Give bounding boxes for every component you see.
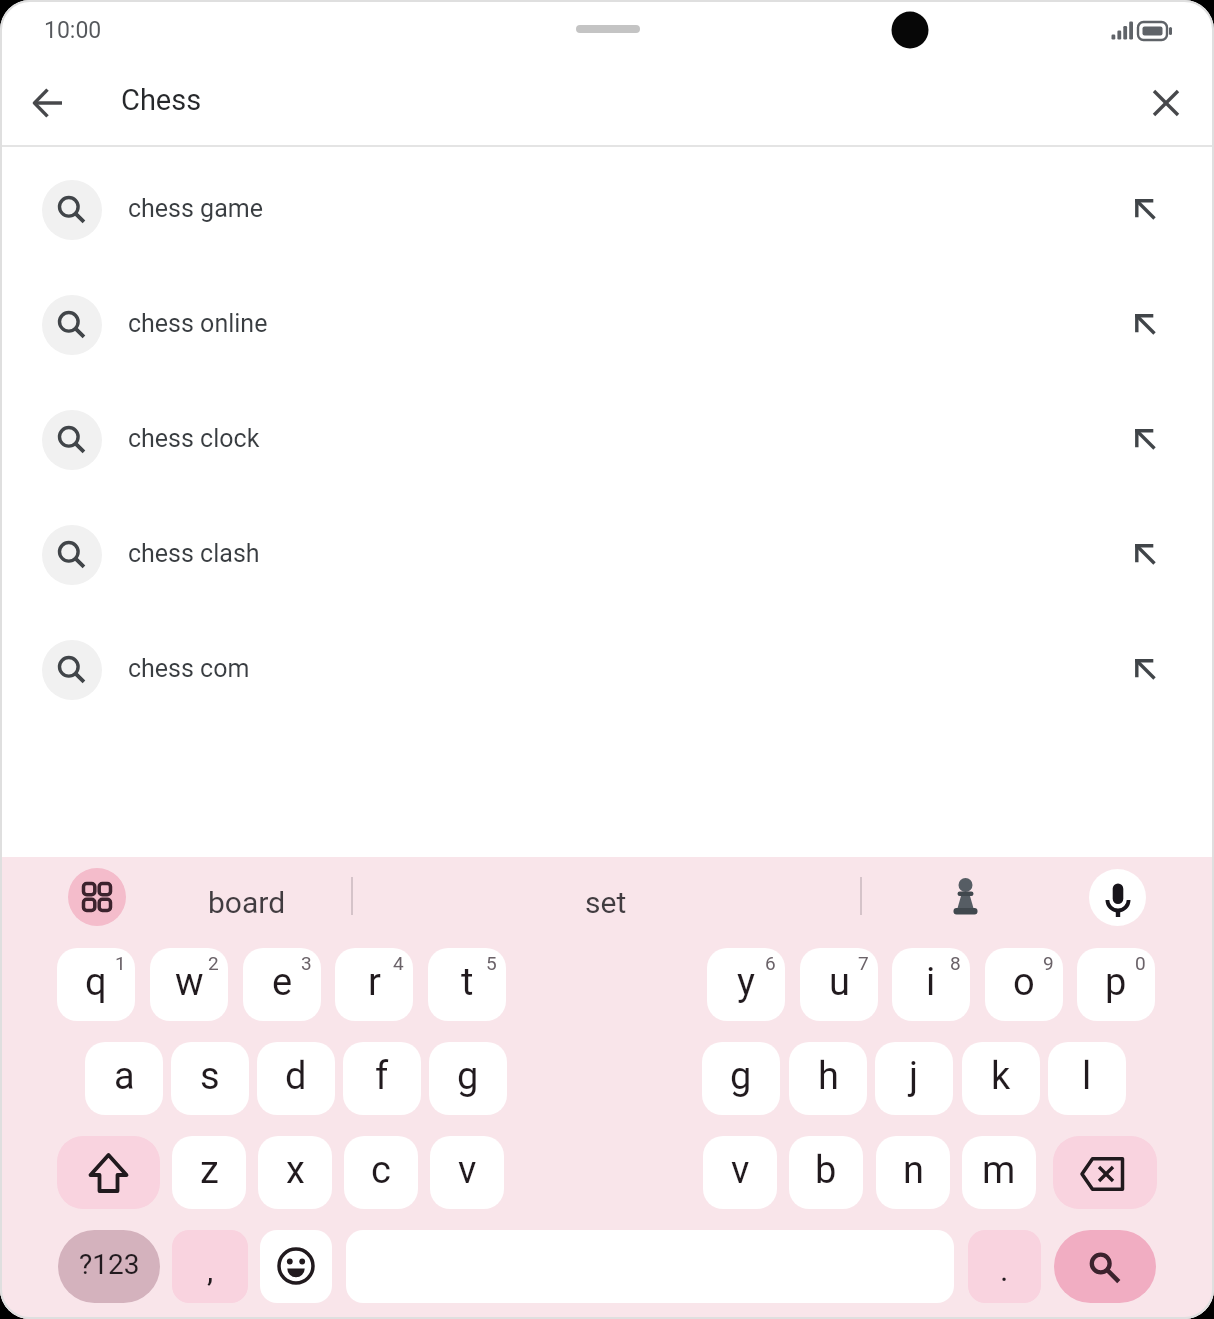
button[interactable]: , — [172, 1230, 248, 1303]
button[interactable] — [1053, 1136, 1157, 1209]
staticText: i — [926, 960, 936, 1005]
staticText: 6 — [765, 952, 776, 974]
staticText: d — [285, 1054, 307, 1099]
button[interactable]: s — [171, 1042, 249, 1115]
button[interactable]: n — [876, 1136, 950, 1209]
staticText: e — [272, 960, 293, 1005]
staticText: 0 — [1135, 952, 1146, 974]
staticText: chess game — [128, 194, 263, 223]
button[interactable]: m — [962, 1136, 1036, 1209]
button[interactable]: w — [150, 948, 228, 1021]
button[interactable]: b — [789, 1136, 863, 1209]
staticText: . — [1000, 1251, 1009, 1289]
staticText: b — [815, 1148, 837, 1193]
button[interactable]: y — [707, 948, 785, 1021]
staticText: 8 — [950, 952, 961, 974]
staticText: 9 — [1043, 952, 1054, 974]
button[interactable]: l — [1048, 1042, 1126, 1115]
button[interactable]: chess online — [0, 267, 1214, 382]
staticText: chess com — [128, 654, 250, 683]
staticText: k — [991, 1054, 1011, 1099]
staticText: Chess — [121, 83, 202, 117]
staticText: u — [829, 960, 850, 1005]
staticText: x — [286, 1148, 305, 1193]
staticText: 4 — [393, 952, 404, 974]
button[interactable]: v — [430, 1136, 504, 1209]
staticText: 7 — [858, 952, 869, 974]
button[interactable]: r — [335, 948, 413, 1021]
staticText: r — [368, 960, 381, 1005]
button[interactable]: board — [146, 857, 347, 948]
button[interactable]: set — [506, 857, 706, 948]
button[interactable]: c — [344, 1136, 418, 1209]
staticText: c — [371, 1148, 391, 1193]
staticText: 2 — [208, 952, 219, 974]
staticText: f — [375, 1054, 389, 1099]
button[interactable] — [1138, 75, 1194, 131]
button[interactable]: chess clash — [0, 497, 1214, 612]
staticText: m — [982, 1148, 1016, 1193]
button[interactable]: chess com — [0, 612, 1214, 727]
button[interactable]: g — [429, 1042, 507, 1115]
button[interactable]: z — [172, 1136, 246, 1209]
staticText: j — [909, 1054, 919, 1099]
staticText: 5 — [486, 952, 497, 974]
button[interactable] — [57, 1136, 160, 1209]
button[interactable]: p — [1077, 948, 1155, 1021]
button[interactable]: i — [892, 948, 970, 1021]
button[interactable]: j — [875, 1042, 953, 1115]
staticText: 3 — [301, 952, 312, 974]
button[interactable]: a — [85, 1042, 163, 1115]
button[interactable]: o — [985, 948, 1063, 1021]
staticText: g — [457, 1054, 479, 1099]
staticText: q — [85, 960, 107, 1005]
staticText: p — [1105, 960, 1127, 1005]
button[interactable] — [68, 868, 126, 926]
button[interactable]: d — [257, 1042, 335, 1115]
button[interactable]: u — [800, 948, 878, 1021]
staticText: ?123 — [79, 1248, 140, 1281]
staticText: chess clock — [128, 424, 260, 453]
button[interactable]: k — [962, 1042, 1040, 1115]
staticText: o — [1013, 960, 1035, 1005]
button[interactable]: chess game — [0, 152, 1214, 267]
staticText: g — [730, 1054, 752, 1099]
staticText: , — [207, 1251, 214, 1289]
button[interactable]: ?123 — [58, 1230, 160, 1303]
staticText: a — [114, 1054, 135, 1099]
button[interactable]: q — [57, 948, 135, 1021]
staticText: 10:00 — [44, 17, 102, 44]
button[interactable]: v — [703, 1136, 777, 1209]
staticText: board — [208, 885, 286, 920]
button[interactable] — [20, 75, 76, 131]
staticText: z — [200, 1148, 219, 1193]
staticText: chess online — [128, 309, 268, 338]
staticText: s — [200, 1054, 220, 1099]
button[interactable]: t — [428, 948, 506, 1021]
staticText: t — [461, 960, 474, 1005]
staticText: v — [458, 1148, 477, 1193]
staticText: h — [818, 1054, 839, 1099]
staticText: l — [1082, 1054, 1092, 1099]
staticText: n — [903, 1148, 924, 1193]
button[interactable]: h — [789, 1042, 867, 1115]
button[interactable]: g — [702, 1042, 780, 1115]
staticText: w — [175, 960, 204, 1005]
button[interactable] — [1089, 869, 1146, 926]
button[interactable]: x — [258, 1136, 332, 1209]
button[interactable]: f — [343, 1042, 421, 1115]
button[interactable] — [260, 1230, 332, 1303]
button[interactable]: . — [968, 1230, 1041, 1303]
button[interactable]: e — [243, 948, 321, 1021]
button[interactable]: chess clock — [0, 382, 1214, 497]
button[interactable] — [1054, 1230, 1156, 1303]
staticText: v — [731, 1148, 750, 1193]
staticText: y — [737, 960, 755, 1005]
staticText: set — [585, 885, 627, 920]
staticText: chess clash — [128, 539, 260, 568]
staticText: 1 — [115, 952, 126, 974]
